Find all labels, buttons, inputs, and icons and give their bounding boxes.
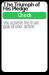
- staticText: The Triumph of: [3, 1, 40, 8]
- staticText: Check: [18, 13, 31, 18]
- staticText: goal of your action.: [3, 24, 35, 29]
- button[interactable]: Check: [2, 12, 46, 19]
- staticText: His Pledge: [3, 5, 28, 12]
- staticText: You achieve the main: [3, 20, 39, 25]
